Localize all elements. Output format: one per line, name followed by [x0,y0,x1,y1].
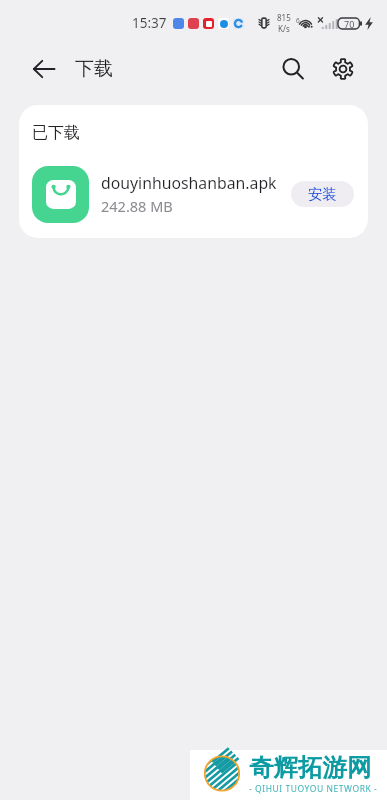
staticText: 下载 [75,57,113,81]
button[interactable]: Search [271,47,315,91]
staticText: 奇辉拓游网 [249,752,372,783]
staticText: 6 [296,16,300,25]
staticText: 15:37 [132,14,167,32]
staticText: 70 [344,18,355,29]
staticText: 815 [277,12,291,23]
button[interactable]: Back [22,47,66,91]
staticText: K/s [278,23,290,34]
button[interactable]: douyinhuoshanban.apk [19,163,368,225]
staticText: douyinhuoshanban.apk [101,172,277,194]
button[interactable]: Settings [321,47,365,91]
staticText: 242.88 MB [101,196,173,216]
button[interactable]: 安装 [291,181,354,207]
staticText: 安装 [308,185,337,203]
staticText: - QIHUI TUOYOU NETWORK - [249,783,378,795]
staticText: 已下载 [32,123,80,143]
